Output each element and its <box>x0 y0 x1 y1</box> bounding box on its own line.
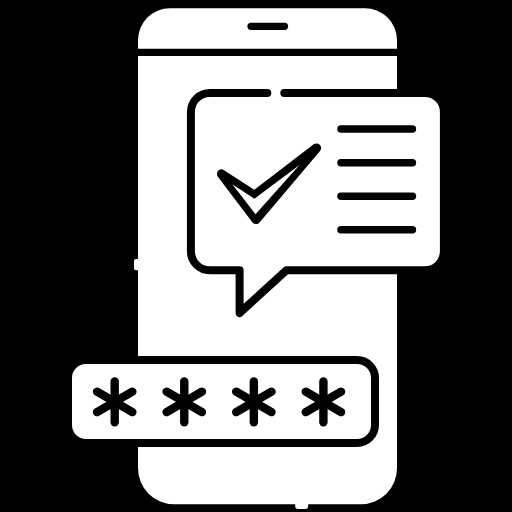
button[interactable]: Passcode field, four characters entered <box>64 356 379 447</box>
button[interactable]: Power button <box>130 255 144 275</box>
button[interactable]: Verified message <box>187 89 440 319</box>
